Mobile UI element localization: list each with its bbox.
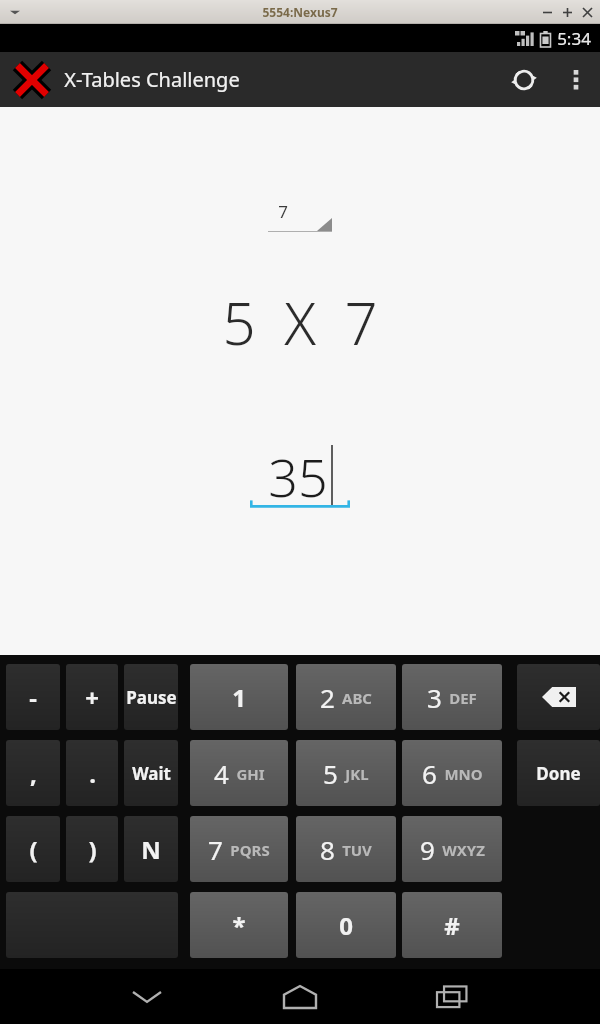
staticText: 8 [320, 832, 335, 867]
button[interactable]: Done [517, 740, 600, 806]
staticText: 5:34 [557, 27, 591, 50]
staticText: N [141, 833, 161, 866]
button[interactable]: + [66, 664, 118, 730]
staticText: ( [29, 833, 38, 866]
button[interactable]: Delete [517, 664, 600, 730]
staticText: ) [88, 833, 97, 866]
button[interactable]: 9 [402, 816, 502, 882]
button[interactable]: , [6, 740, 60, 806]
staticText: MNO [444, 764, 483, 784]
staticText: Done [536, 762, 581, 785]
staticText: X-Tables Challenge [64, 66, 240, 93]
staticText: PQRS [230, 840, 270, 860]
staticText: 5554:Nexus7 [262, 4, 338, 20]
staticText: WXYZ [442, 840, 485, 860]
staticText: # [444, 909, 460, 942]
staticText: TUV [342, 840, 372, 860]
button[interactable]: 2 [296, 664, 396, 730]
button[interactable]: * [190, 892, 288, 958]
button[interactable]: 6 [402, 740, 502, 806]
staticText: 1 [232, 681, 246, 714]
staticText: 7 [278, 200, 288, 223]
button[interactable]: ( [6, 816, 60, 882]
staticText: Wait [132, 762, 171, 785]
staticText: - [29, 681, 37, 714]
staticText: 3 [427, 680, 442, 715]
staticText: DEF [449, 688, 477, 708]
button[interactable]: 5 [296, 740, 396, 806]
button[interactable]: 4 [190, 740, 288, 806]
button[interactable]: . [66, 740, 118, 806]
button[interactable]: Recent apps [421, 973, 485, 1021]
button[interactable]: 7 [190, 816, 288, 882]
staticText: * [232, 909, 246, 942]
button[interactable]: 8 [296, 816, 396, 882]
button[interactable]: 1 [190, 664, 288, 730]
button[interactable]: More options [552, 52, 600, 107]
button[interactable]: 0 [296, 892, 396, 958]
button[interactable]: ) [66, 816, 118, 882]
staticText: 5 [222, 283, 256, 362]
button[interactable]: Wait [124, 740, 178, 806]
staticText: 7 [208, 832, 223, 867]
staticText: 2 [320, 680, 335, 715]
staticText: . [89, 757, 96, 790]
staticText: 0 [339, 909, 353, 942]
staticText: Pause [126, 686, 177, 709]
staticText: 5 [323, 756, 338, 791]
staticText: , [30, 757, 37, 790]
button[interactable] [6, 892, 178, 958]
button[interactable]: Hide keyboard [115, 973, 179, 1021]
button[interactable]: 35 [250, 441, 350, 509]
button[interactable]: # [402, 892, 502, 958]
staticText: 7 [344, 283, 378, 362]
button[interactable]: N [124, 816, 178, 882]
button[interactable]: Refresh [496, 52, 552, 107]
staticText: JKL [345, 764, 369, 784]
button[interactable]: 3 [402, 664, 502, 730]
staticText: 4 [214, 756, 229, 791]
staticText: X [284, 283, 316, 362]
staticText: 9 [420, 832, 435, 867]
button[interactable]: 7 [268, 200, 332, 232]
staticText: 6 [422, 756, 437, 791]
staticText: 35 [268, 441, 328, 509]
staticText: ABC [342, 688, 372, 708]
button[interactable]: Pause [124, 664, 178, 730]
button[interactable]: Home [268, 973, 332, 1021]
staticText: + [85, 681, 99, 714]
button[interactable]: - [6, 664, 60, 730]
staticText: GHI [236, 764, 265, 784]
